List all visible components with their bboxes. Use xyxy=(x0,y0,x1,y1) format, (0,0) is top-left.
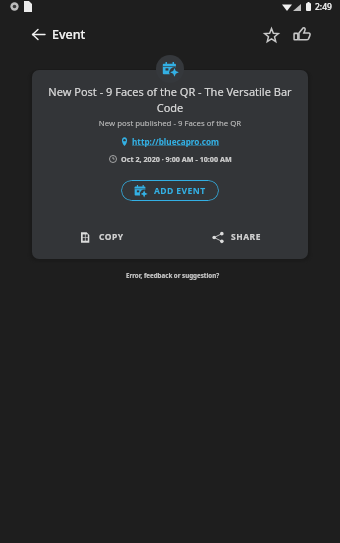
button[interactable]: http://bluecapro.com xyxy=(121,136,220,147)
button[interactable]: ADD EVENT xyxy=(121,180,219,201)
staticText: http://bluecapro.com xyxy=(132,136,220,147)
staticText: SHARE xyxy=(231,231,261,243)
button[interactable]: SHARE xyxy=(212,225,261,249)
staticText: ADD EVENT xyxy=(154,185,206,197)
staticText: New Post - 9 Faces of the QR - The Versa… xyxy=(42,84,298,115)
staticText: Event xyxy=(52,26,86,43)
button[interactable]: Like xyxy=(290,22,314,46)
button[interactable]: Favorite xyxy=(259,23,283,47)
button[interactable]: Error, feedback or suggestion? xyxy=(126,271,220,279)
staticText: 2:49 xyxy=(315,1,332,13)
staticText: New post published - 9 Faces of the QR xyxy=(42,118,298,129)
button[interactable]: Back xyxy=(26,22,50,46)
staticText: Oct 2, 2020 · 9:00 AM - 10:00 AM xyxy=(121,154,232,164)
button[interactable]: COPY xyxy=(80,225,124,249)
staticText: COPY xyxy=(99,231,124,243)
